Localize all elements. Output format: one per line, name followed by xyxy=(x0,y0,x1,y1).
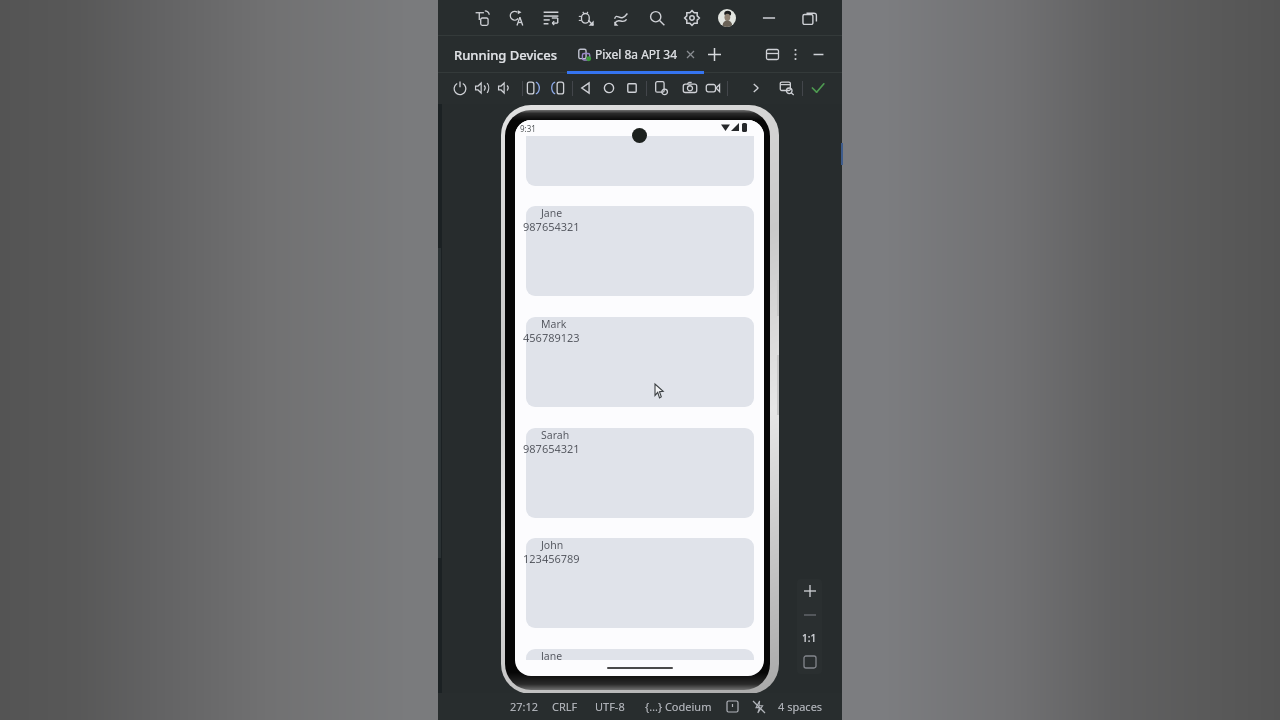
button[interactable]: Settings xyxy=(679,5,705,31)
staticText: Sarah xyxy=(541,428,570,442)
button[interactable]: CRLF xyxy=(552,699,578,714)
staticText: Pixel 8a API 34 xyxy=(595,46,678,62)
button[interactable]: 4 spaces xyxy=(778,699,823,714)
button[interactable]: Notifications xyxy=(723,697,742,716)
button[interactable]: Rotate left xyxy=(522,77,544,99)
button[interactable]: Search xyxy=(644,5,670,31)
button[interactable]: Zoom in xyxy=(797,579,822,603)
button[interactable]: Debug xyxy=(573,5,599,31)
button[interactable]: Sarah xyxy=(526,428,754,518)
staticText: 987654321 xyxy=(523,219,580,234)
button[interactable]: Pixel 8a API 34 xyxy=(578,36,678,72)
button[interactable]: More options xyxy=(785,44,805,64)
staticText: 9:31 xyxy=(520,123,536,134)
button[interactable]: Fit to window xyxy=(797,649,822,674)
staticText: 1:1 xyxy=(802,631,817,645)
button[interactable]: Code with me xyxy=(504,5,530,31)
button[interactable]: Hide xyxy=(808,44,828,64)
staticText: Mark xyxy=(541,317,567,331)
button[interactable] xyxy=(526,136,754,186)
button[interactable]: Rotate right xyxy=(547,77,569,99)
button[interactable]: Power save mode xyxy=(749,697,768,716)
button[interactable]: Overview xyxy=(621,77,643,99)
button[interactable]: Restore xyxy=(797,5,823,31)
staticText: 987654321 xyxy=(523,441,580,456)
button[interactable]: Zoom out xyxy=(797,603,822,626)
button[interactable]: Record screen xyxy=(702,77,724,99)
staticText: Jane xyxy=(541,206,563,220)
button[interactable]: {…} Codeium xyxy=(645,699,712,714)
staticText: John xyxy=(541,538,564,552)
button[interactable]: Volume up xyxy=(471,77,493,99)
button[interactable]: Screenshot xyxy=(679,77,701,99)
button[interactable]: UTF-8 xyxy=(595,699,625,714)
button[interactable]: Inspect xyxy=(776,77,798,99)
button[interactable]: Layout xyxy=(762,44,782,64)
button[interactable]: Device settings xyxy=(650,77,672,99)
staticText: Jane xyxy=(541,649,563,660)
button[interactable]: Running xyxy=(807,77,829,99)
button[interactable]: Jane xyxy=(526,206,754,296)
button[interactable]: Profiler xyxy=(608,5,634,31)
staticText: 123456789 xyxy=(523,551,580,566)
button[interactable]: Add device xyxy=(704,44,724,64)
staticText: 456789123 xyxy=(523,330,580,345)
button[interactable]: Volume down xyxy=(494,77,516,99)
button[interactable]: Jane xyxy=(526,649,754,660)
button[interactable]: Back xyxy=(575,77,597,99)
button[interactable]: 1:1 xyxy=(797,626,822,649)
button[interactable]: Mark xyxy=(526,317,754,407)
button[interactable]: John xyxy=(526,538,754,628)
button[interactable]: More xyxy=(745,77,767,99)
button[interactable]: Minimize xyxy=(756,5,782,31)
button[interactable]: Home xyxy=(598,77,620,99)
button[interactable]: Account xyxy=(714,5,740,31)
button[interactable]: 27:12 xyxy=(510,699,539,714)
button[interactable]: Project structure xyxy=(469,5,495,31)
button[interactable]: Power xyxy=(449,77,471,99)
button[interactable]: Running Devices xyxy=(454,46,557,64)
button[interactable]: Close tab xyxy=(681,45,699,63)
button[interactable]: Logcat xyxy=(538,5,564,31)
